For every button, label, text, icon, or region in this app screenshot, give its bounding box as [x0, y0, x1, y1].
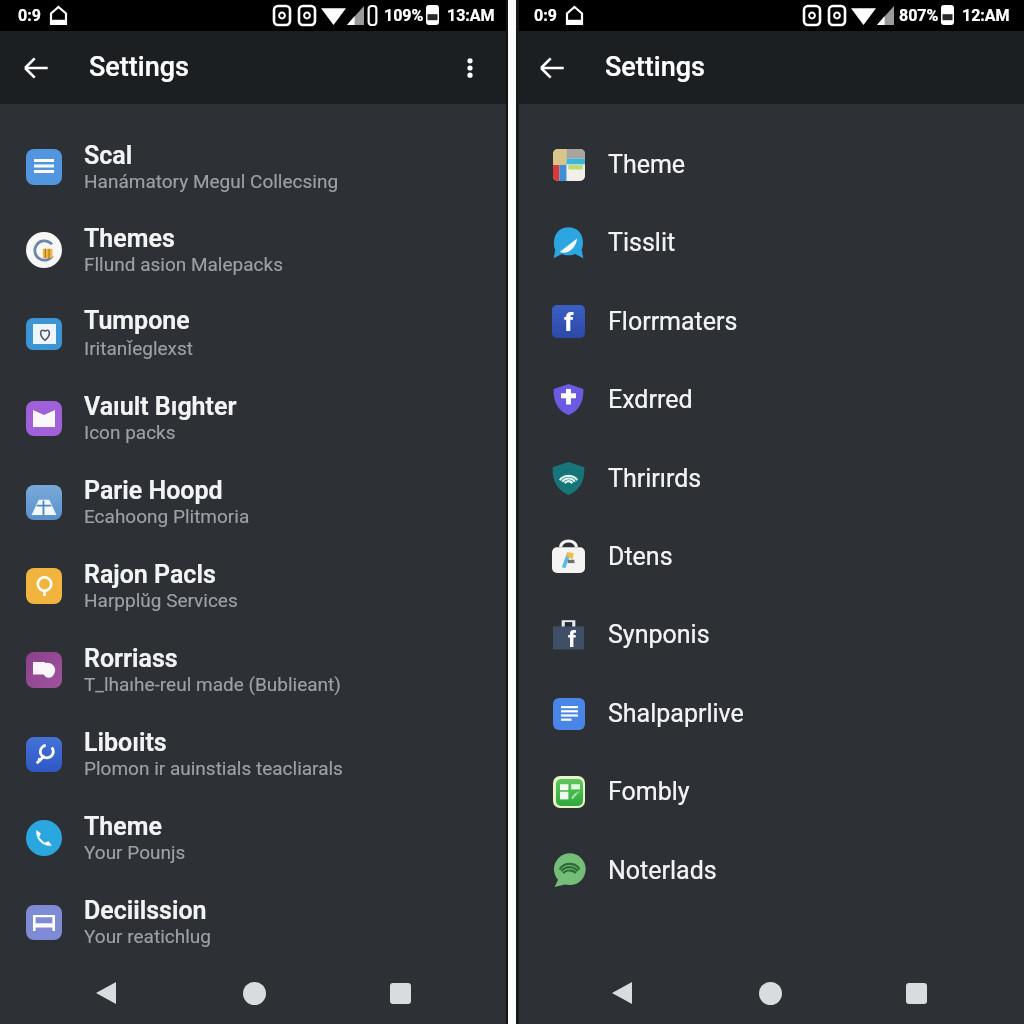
staticText: Noterlads	[608, 856, 717, 885]
staticText: 0:9	[534, 6, 557, 25]
staticText: Icon packs	[84, 421, 176, 443]
staticText: Vaıult Bıghter	[84, 392, 237, 421]
button[interactable]: Recents	[374, 967, 426, 1019]
button[interactable]: Tumpone	[0, 292, 506, 376]
staticText: Rorriass	[84, 644, 178, 673]
staticText: 12:AM	[962, 6, 1010, 25]
button[interactable]: f	[516, 282, 1024, 360]
staticText: Exdrred	[608, 385, 693, 414]
staticText: f	[564, 307, 574, 337]
button[interactable]: Dtens	[516, 517, 1024, 595]
button[interactable]: Rorriass	[0, 628, 506, 712]
button[interactable]: Liboıits	[0, 712, 506, 796]
staticText: Iritanǐeglexst	[84, 335, 194, 361]
button[interactable]: Back	[596, 967, 648, 1019]
staticText: Theme	[608, 150, 686, 179]
staticText: Harpplŭg Services	[84, 589, 238, 611]
button[interactable]: Parie Hoopd	[0, 460, 506, 544]
staticText: 13:AM	[447, 6, 495, 25]
button[interactable]: Vaıult Bıghter	[0, 376, 506, 460]
staticText: Fombly	[608, 777, 690, 806]
button[interactable]: More options	[446, 44, 494, 92]
button[interactable]: Fombly	[516, 752, 1024, 830]
staticText: Thrirırds	[608, 464, 702, 493]
staticText: Deciilssion	[84, 896, 207, 925]
staticText: 807%	[899, 6, 939, 25]
staticText: 0:9	[18, 6, 41, 25]
staticText: T_lhaıhe-reul made (Bublieant)	[84, 673, 341, 695]
staticText: Shalpaprlive	[608, 699, 744, 728]
button[interactable]: Back	[12, 44, 60, 92]
button[interactable]: Theme	[516, 125, 1024, 203]
staticText: Dtens	[608, 542, 673, 571]
button[interactable]: Deciilssion	[0, 880, 506, 964]
staticText: Liboıits	[84, 728, 167, 757]
staticText: Theme	[84, 812, 162, 841]
button[interactable]: Themes	[0, 208, 506, 292]
button[interactable]: Tisslit	[516, 203, 1024, 281]
staticText: Tumpone	[84, 306, 190, 335]
button[interactable]: Shalpaprlive	[516, 674, 1024, 752]
staticText: Your Pounjs	[84, 841, 186, 863]
button[interactable]: Thrirırds	[516, 439, 1024, 517]
staticText: Settings	[89, 51, 189, 83]
button[interactable]: Home	[228, 967, 280, 1019]
staticText: Settings	[605, 51, 705, 83]
staticText: Hanámatory Megul Collecsing	[84, 170, 339, 192]
staticText: Rajon Pacls	[84, 560, 216, 589]
staticText: Scal	[84, 141, 133, 170]
staticText: f	[568, 627, 576, 653]
button[interactable]: Theme	[0, 796, 506, 880]
staticText: Parie Hoopd	[84, 476, 223, 505]
button[interactable]: Recents	[890, 967, 942, 1019]
staticText: Plomon ir auinstials teacliarals	[84, 757, 343, 779]
staticText: Your reatichlug	[84, 925, 211, 947]
staticText: Synponis	[608, 620, 710, 649]
button[interactable]: f	[516, 595, 1024, 673]
button[interactable]: Back	[80, 967, 132, 1019]
staticText: Florrmaters	[608, 307, 738, 336]
button[interactable]: Back	[528, 44, 576, 92]
staticText: Tisslit	[608, 228, 676, 257]
button[interactable]: Scal	[0, 125, 506, 209]
staticText: Ecahoong Plitmoria	[84, 505, 250, 527]
staticText: Themes	[84, 224, 175, 253]
button[interactable]: Exdrred	[516, 360, 1024, 438]
button[interactable]: Home	[744, 967, 796, 1019]
button[interactable]: Noterlads	[516, 831, 1024, 909]
staticText: 109%	[384, 6, 424, 25]
button[interactable]: Rajon Pacls	[0, 544, 506, 628]
staticText: Fllund asion Malepacks	[84, 253, 283, 275]
